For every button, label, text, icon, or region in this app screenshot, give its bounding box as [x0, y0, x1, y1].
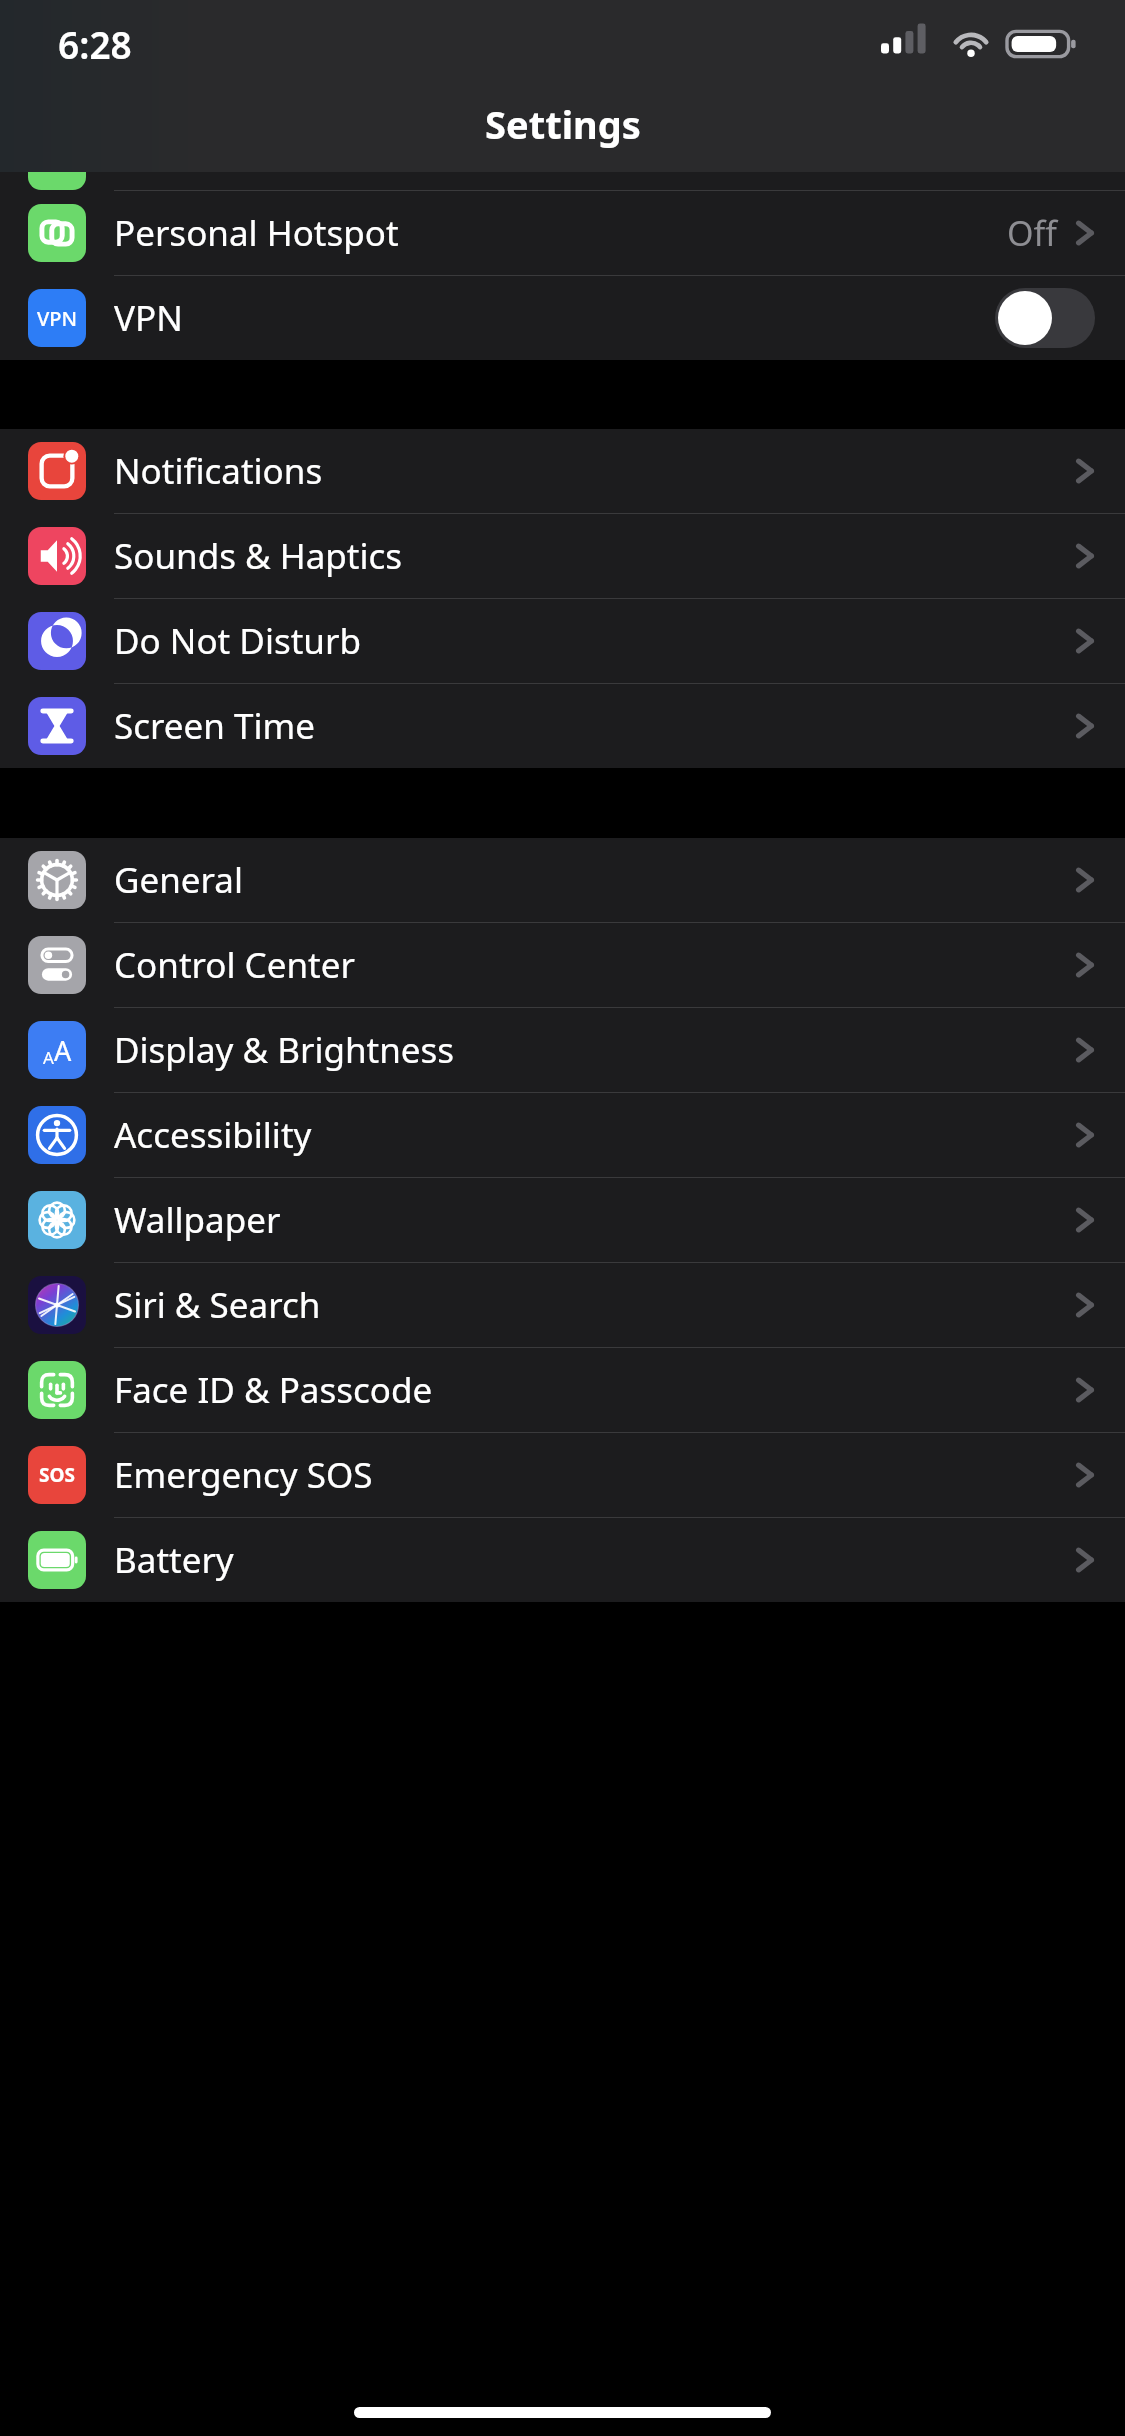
button[interactable]: Accessibility	[0, 1093, 1125, 1178]
button[interactable]: VPN	[0, 276, 1125, 360]
staticText: Do Not Disturb	[114, 617, 1075, 665]
staticText: Accessibility	[114, 1111, 1075, 1159]
staticText: A	[43, 1046, 54, 1069]
staticText: Settings	[485, 98, 641, 150]
staticText: Emergency SOS	[114, 1451, 1075, 1499]
button[interactable]: VPN toggle, off	[995, 288, 1095, 348]
button[interactable]: Siri & Search	[0, 1263, 1125, 1348]
staticText: Face ID & Passcode	[114, 1366, 1075, 1414]
staticText: Personal Hotspot	[114, 209, 1007, 257]
button[interactable]: Screen Time	[0, 684, 1125, 768]
button[interactable]: Do Not Disturb	[0, 599, 1125, 684]
button[interactable]: General	[0, 838, 1125, 923]
staticText: Battery	[114, 1536, 1075, 1584]
staticText: Off	[1007, 210, 1057, 256]
staticText: General	[114, 856, 1075, 904]
button[interactable]: Personal Hotspot	[0, 191, 1125, 276]
button[interactable]: Sounds & Haptics	[0, 514, 1125, 599]
staticText: Siri & Search	[114, 1281, 1075, 1329]
staticText: A	[54, 1032, 72, 1069]
button[interactable]: Wallpaper	[0, 1178, 1125, 1263]
button[interactable]: SOS	[0, 1433, 1125, 1518]
button[interactable]: Face ID & Passcode	[0, 1348, 1125, 1433]
button[interactable]: Notifications	[0, 429, 1125, 514]
staticText: Display & Brightness	[114, 1026, 1075, 1074]
staticText: VPN	[37, 305, 78, 332]
staticText: Notifications	[114, 447, 1075, 495]
staticText: SOS	[39, 1462, 75, 1488]
staticText: VPN	[114, 294, 995, 342]
staticText: Sounds & Haptics	[114, 532, 1075, 580]
staticText: Screen Time	[114, 702, 1075, 750]
button[interactable]: Battery	[0, 1518, 1125, 1602]
button[interactable]: A	[0, 1008, 1125, 1093]
staticText: Wallpaper	[114, 1196, 1075, 1244]
staticText: 6:28	[58, 19, 132, 69]
button[interactable]: Control Center	[0, 923, 1125, 1008]
staticText: Control Center	[114, 941, 1075, 989]
